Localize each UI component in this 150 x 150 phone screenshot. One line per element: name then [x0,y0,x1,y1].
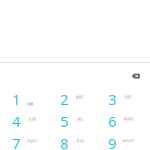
staticText: PQRS [27,138,37,143]
staticText: WXYZ [123,138,134,143]
staticText: ABC [76,94,85,99]
button[interactable]: 4 [1,111,47,132]
button[interactable]: 6 [97,111,143,132]
button[interactable]: 5 [49,111,95,132]
staticText: 8 [60,134,68,150]
staticText: 6 [108,112,116,131]
staticText: TUV [76,138,84,143]
button[interactable]: 9 [97,133,143,150]
staticText: 7 [12,134,20,150]
staticText: JKL [77,116,83,121]
staticText: 4 [12,112,20,131]
button[interactable]: 3 [97,89,143,110]
staticText: DEF [125,94,132,99]
button[interactable]: 1 [1,89,47,110]
staticText: 1 [12,90,20,109]
staticText: 9 [108,134,116,150]
button[interactable]: 2 [49,89,95,110]
staticText: 3 [108,90,116,109]
staticText: 5 [60,112,68,131]
button[interactable]: 8 [49,133,95,150]
staticText: GHI [29,116,36,121]
staticText: 2 [60,90,68,109]
button[interactable]: Delete [125,69,147,83]
staticText: MNO [123,116,133,121]
button[interactable]: 7 [1,133,47,150]
